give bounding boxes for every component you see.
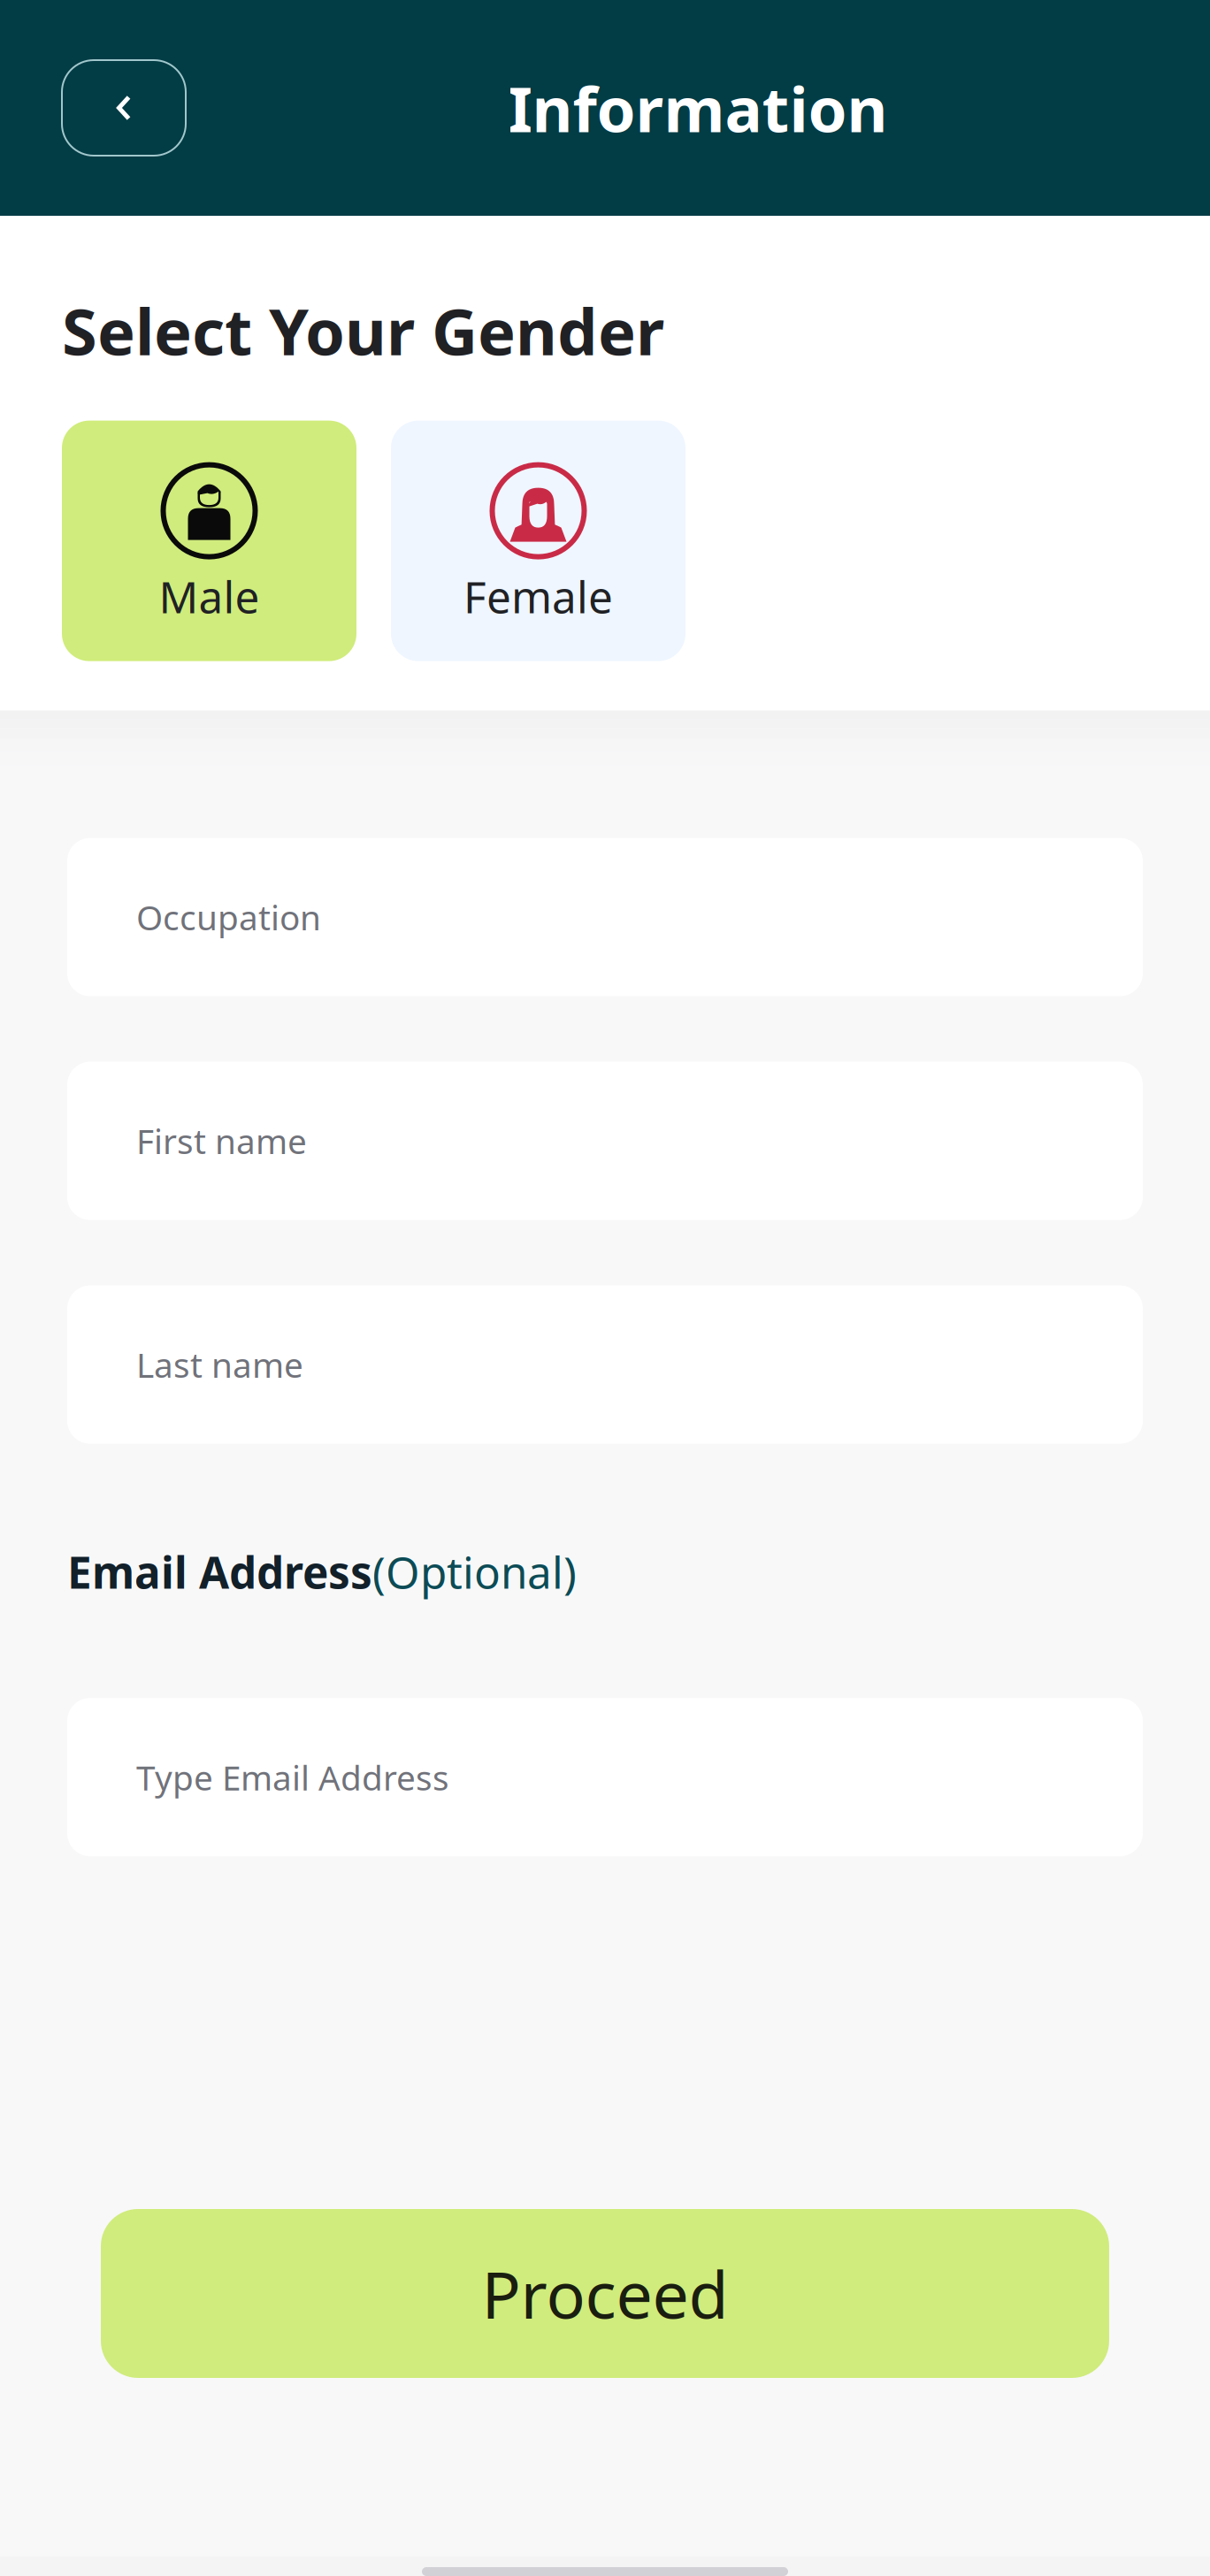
- staticText: Email Address: [67, 1543, 372, 1601]
- staticText: Information: [508, 66, 888, 149]
- staticText: Type Email Address: [136, 1754, 449, 1800]
- staticText: Proceed: [482, 2250, 728, 2337]
- staticText: Male: [159, 567, 260, 625]
- button[interactable]: Back: [62, 60, 186, 156]
- staticText: (Optional): [372, 1543, 577, 1601]
- button[interactable]: Type Email Address: [67, 1698, 1143, 1856]
- button[interactable]: Male: [62, 421, 356, 661]
- button[interactable]: Female: [391, 421, 685, 661]
- staticText: Select Your Gender: [62, 288, 664, 373]
- staticText: Occupation: [136, 894, 321, 940]
- button[interactable]: Last name: [67, 1285, 1143, 1444]
- button[interactable]: Occupation: [67, 838, 1143, 996]
- button[interactable]: Proceed: [101, 2209, 1109, 2378]
- staticText: Last name: [136, 1342, 303, 1387]
- staticText: First name: [136, 1118, 307, 1163]
- staticText: Female: [463, 567, 613, 625]
- button[interactable]: First name: [67, 1062, 1143, 1220]
